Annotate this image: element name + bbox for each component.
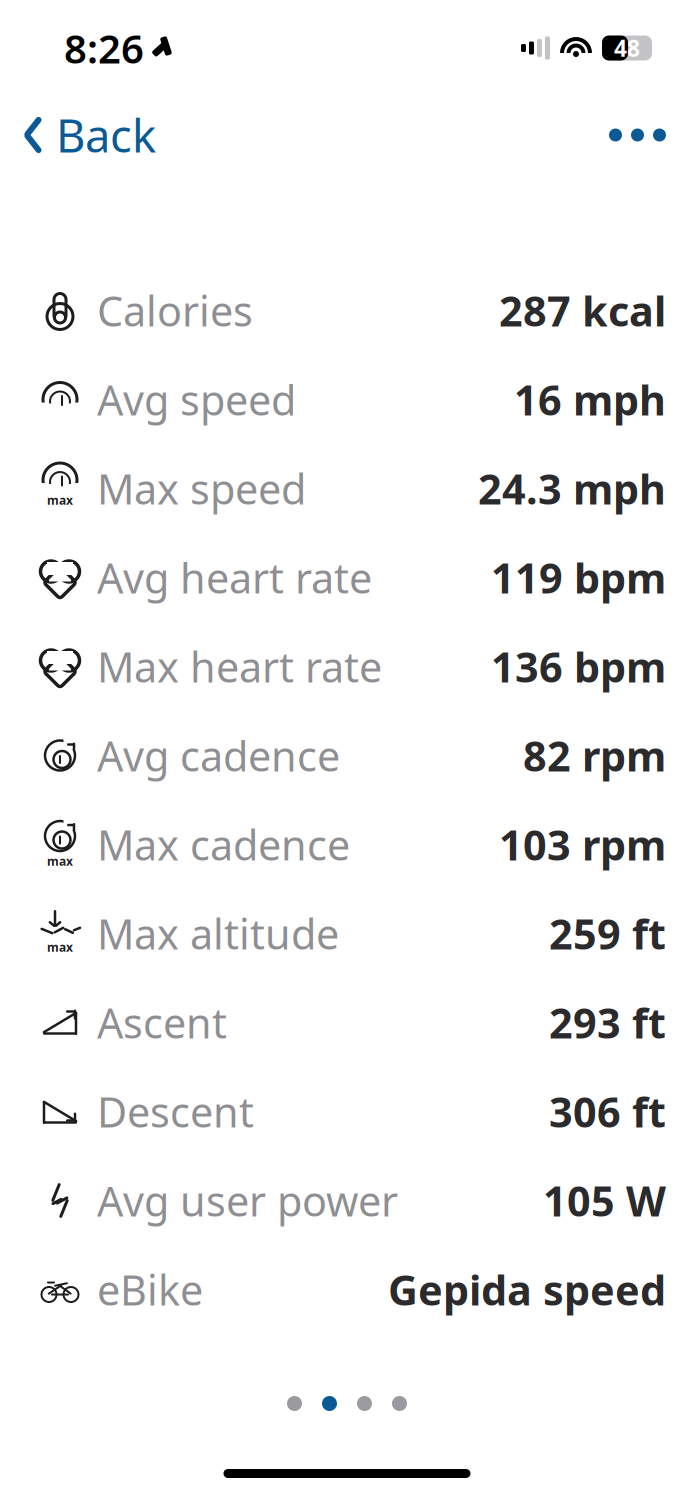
staticText: 82 rpm xyxy=(523,728,666,783)
staticText: Back xyxy=(56,105,156,165)
staticText: Avg cadence xyxy=(97,728,340,783)
staticText: 8:26 xyxy=(64,21,144,74)
staticText: 259 ft xyxy=(549,906,666,961)
staticText: Avg heart rate xyxy=(97,550,372,605)
staticText: 287 kcal xyxy=(499,283,666,338)
staticText: 48 xyxy=(614,33,640,63)
button[interactable]: Avg speed xyxy=(0,355,694,444)
button[interactable]: Avg user power xyxy=(0,1156,694,1245)
staticText: 136 bpm xyxy=(491,639,666,694)
staticText: 16 mph xyxy=(514,372,666,427)
staticText: Calories xyxy=(97,283,253,338)
staticText: Max heart rate xyxy=(97,639,382,694)
button[interactable]: Avg cadence xyxy=(0,711,694,800)
button[interactable]: More options xyxy=(589,110,686,159)
button[interactable]: Calories xyxy=(0,266,694,355)
staticText: max xyxy=(47,853,73,869)
staticText: Avg user power xyxy=(97,1173,398,1228)
staticText: Gepida speed xyxy=(388,1262,666,1317)
button[interactable]: Avg heart rate xyxy=(0,533,694,622)
button[interactable]: eBike xyxy=(0,1245,694,1334)
staticText: 24.3 mph xyxy=(478,461,666,516)
button[interactable]: max xyxy=(0,889,694,978)
staticText: Max cadence xyxy=(97,817,350,872)
staticText: Descent xyxy=(97,1084,254,1139)
staticText: eBike xyxy=(97,1262,203,1317)
button[interactable]: Max heart rate xyxy=(0,622,694,711)
button[interactable]: max xyxy=(0,800,694,889)
button[interactable]: Ascent xyxy=(0,978,694,1067)
button[interactable]: max xyxy=(0,444,694,533)
staticText: Max speed xyxy=(97,461,306,516)
staticText: max xyxy=(47,492,73,508)
staticText: Ascent xyxy=(97,995,227,1050)
staticText: 306 ft xyxy=(549,1084,666,1139)
staticText: 293 ft xyxy=(549,995,666,1050)
button[interactable]: Back xyxy=(4,97,174,173)
staticText: 105 W xyxy=(543,1173,666,1228)
staticText: Avg speed xyxy=(97,372,296,427)
staticText: 119 bpm xyxy=(491,550,666,605)
staticText: max xyxy=(47,939,73,955)
staticText: Max altitude xyxy=(97,906,339,961)
button[interactable]: Descent xyxy=(0,1067,694,1156)
staticText: 103 rpm xyxy=(499,817,666,872)
